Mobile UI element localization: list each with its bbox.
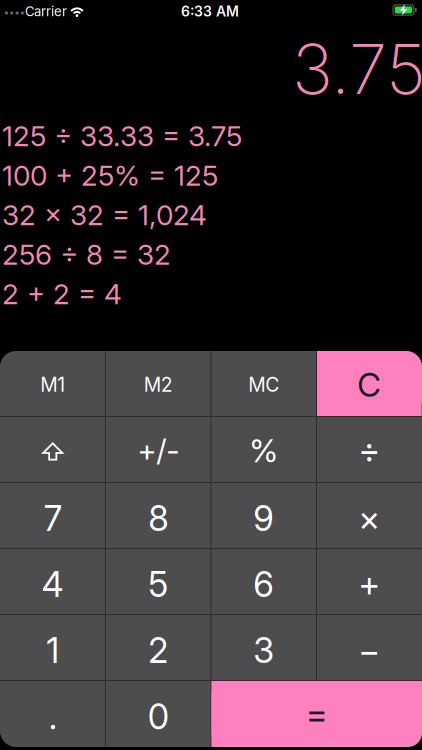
staticText: 6:33 AM	[181, 3, 239, 20]
button[interactable]: Shift	[0, 416, 105, 482]
button[interactable]: C	[316, 352, 422, 417]
button[interactable]: 7	[0, 485, 105, 551]
button[interactable]: −	[316, 617, 422, 683]
staticText: 3.75	[292, 27, 422, 111]
staticText: 4	[42, 564, 64, 605]
button[interactable]: 0	[105, 683, 211, 750]
button[interactable]: .	[0, 683, 105, 750]
staticText: =	[306, 693, 328, 735]
staticText: 125 ÷ 33.33 = 3.75	[2, 119, 242, 153]
button[interactable]: M1	[0, 352, 105, 417]
staticText: 32 × 32 = 1,024	[2, 198, 207, 232]
staticText: ÷	[358, 430, 380, 471]
staticText: .	[49, 696, 57, 737]
staticText: %	[249, 431, 278, 470]
button[interactable]: 9	[211, 485, 316, 551]
staticText: 1	[46, 630, 59, 671]
staticText: 5	[148, 564, 168, 605]
button[interactable]: +/-	[105, 417, 211, 483]
staticText: 100 + 25% = 125	[2, 159, 218, 192]
staticText: MC	[248, 373, 279, 396]
button[interactable]: 6	[211, 551, 316, 617]
staticText: C	[357, 365, 381, 405]
button[interactable]: %	[211, 417, 316, 483]
button[interactable]: 2	[105, 617, 211, 683]
staticText: +/-	[137, 432, 179, 469]
button[interactable]: +	[316, 551, 422, 617]
staticText: Carrier	[25, 4, 67, 19]
staticText: ×	[358, 498, 380, 539]
staticText: 9	[253, 498, 274, 539]
staticText: 256 ÷ 8 = 32	[2, 238, 171, 271]
button[interactable]: M2	[105, 352, 211, 417]
button[interactable]: ÷	[316, 417, 422, 483]
staticText: 3	[253, 630, 274, 671]
staticText: 6	[253, 564, 274, 605]
button[interactable]: 1	[0, 617, 105, 683]
staticText: M2	[144, 373, 173, 396]
staticText: M1	[40, 373, 65, 396]
staticText: −	[358, 630, 380, 671]
button[interactable]: 5	[105, 551, 211, 617]
button[interactable]: 4	[0, 551, 105, 617]
button[interactable]: 8	[105, 485, 211, 551]
staticText: 8	[148, 498, 168, 539]
staticText: +	[358, 564, 380, 605]
staticText: 2 + 2 = 4	[2, 277, 122, 311]
staticText: 2	[148, 630, 168, 671]
staticText: 0	[148, 696, 169, 737]
button[interactable]: 3	[211, 617, 316, 683]
staticText: 7	[44, 498, 62, 539]
button[interactable]: =	[211, 681, 422, 747]
button[interactable]: MC	[211, 352, 316, 417]
button[interactable]: ×	[316, 485, 422, 551]
